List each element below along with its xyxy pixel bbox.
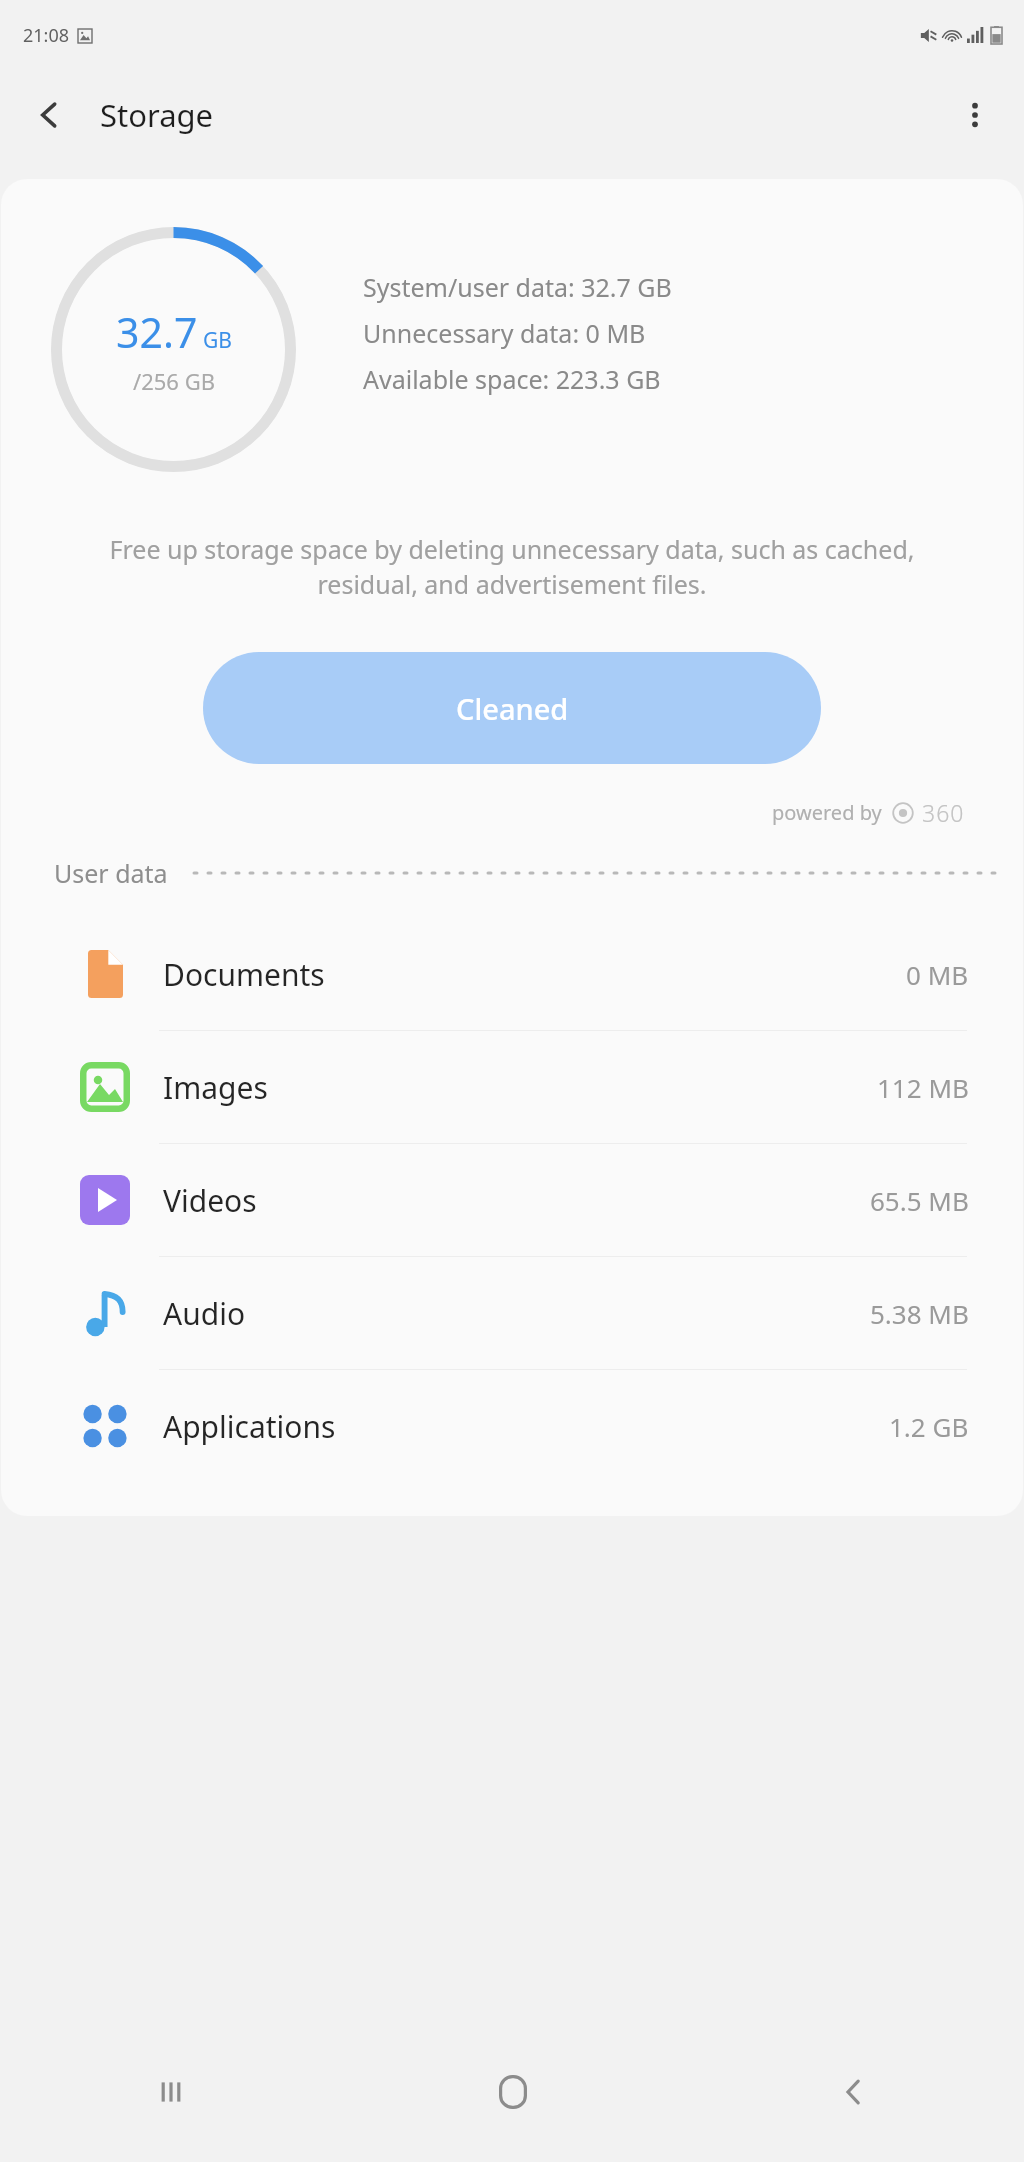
staticText: Cleaned [456, 689, 569, 728]
button[interactable]: Applications [1, 1370, 1023, 1482]
staticText: 21:08 [23, 23, 70, 48]
staticText: User data [54, 856, 168, 890]
staticText: 112 MB [877, 1070, 969, 1105]
staticText: 0 MB [906, 957, 969, 992]
button[interactable]: Back [24, 89, 76, 141]
button[interactable]: Recent apps [0, 2022, 342, 2162]
staticText: Applications [163, 1406, 336, 1447]
staticText: 1.2 GB [889, 1409, 969, 1444]
button[interactable]: Back [683, 2022, 1024, 2162]
staticText: 5.38 MB [870, 1296, 969, 1331]
button[interactable]: Documents [1, 918, 1023, 1030]
staticText: 360 [922, 797, 965, 828]
staticText: Free up storage space by deleting unnece… [57, 532, 967, 602]
staticText: 65.5 MB [870, 1183, 969, 1218]
staticText: Documents [163, 954, 325, 995]
button[interactable]: Home [342, 2022, 683, 2162]
button[interactable]: Audio [1, 1257, 1023, 1369]
button[interactable]: Videos [1, 1144, 1023, 1256]
staticText: Available space: 223.3 GB [363, 362, 661, 396]
staticText: Audio [163, 1293, 246, 1334]
staticText: /256 GB [133, 366, 215, 396]
staticText: powered by [772, 799, 882, 826]
staticText: 32.7 [116, 304, 198, 360]
staticText: GB [203, 326, 232, 355]
button[interactable]: More options [949, 89, 1001, 141]
staticText: Unnecessary data: 0 MB [363, 316, 646, 350]
button[interactable]: Cleaned [203, 652, 821, 764]
button[interactable]: Images [1, 1031, 1023, 1143]
staticText: Storage [100, 94, 214, 136]
staticText: Videos [163, 1180, 257, 1221]
staticText: Images [163, 1067, 268, 1108]
staticText: System/user data: 32.7 GB [363, 270, 672, 304]
